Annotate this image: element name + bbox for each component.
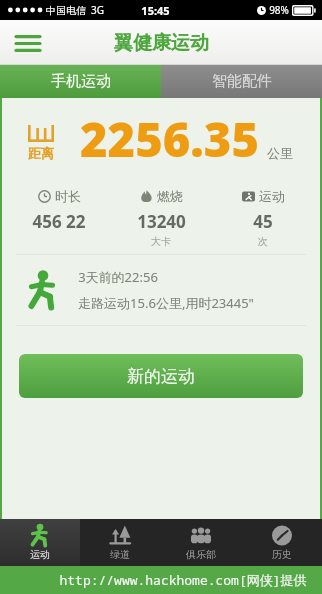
button[interactable]: Menu <box>8 23 48 63</box>
staticText: 新的运动 <box>127 366 195 387</box>
staticText: 历史 <box>272 548 292 561</box>
staticText: 智能配件 <box>212 72 272 91</box>
staticText: 456 22 <box>32 210 86 233</box>
staticText: http://www.hackhome.com[网侠]提供 <box>59 571 307 589</box>
staticText: 运动 <box>30 548 50 561</box>
button[interactable]: 新的运动 <box>19 354 303 398</box>
staticText: 3G <box>91 3 104 17</box>
staticText: 俱乐部 <box>186 548 216 561</box>
button[interactable]: 手机运动 <box>0 65 161 98</box>
button[interactable]: 燃烧 <box>110 188 212 248</box>
button[interactable]: 3天前的22:56 <box>2 255 320 325</box>
staticText: 45 <box>253 210 273 233</box>
staticText: 公里 <box>267 145 293 161</box>
button[interactable]: 运动 <box>0 519 80 566</box>
button[interactable]: 绿道 <box>80 519 160 566</box>
staticText: 大卡 <box>151 235 171 248</box>
button[interactable]: 俱乐部 <box>160 519 241 566</box>
staticText: 走路运动15.6公里,用时23445" <box>78 294 254 312</box>
staticText: 时长 <box>55 188 81 204</box>
staticText: 燃烧 <box>157 188 183 204</box>
staticText: 13240 <box>137 210 186 233</box>
staticText: 次 <box>258 235 268 248</box>
button[interactable]: 历史 <box>241 519 322 566</box>
staticText: 15:45 <box>141 3 170 18</box>
staticText: 2256.35 <box>80 107 259 171</box>
staticText: 距离 <box>28 145 54 161</box>
button[interactable]: 智能配件 <box>161 65 322 98</box>
staticText: 绿道 <box>110 548 130 561</box>
staticText: 手机运动 <box>51 72 111 91</box>
staticText: 运动 <box>259 188 285 204</box>
staticText: 中国电信 <box>46 4 86 17</box>
button[interactable]: 时长 <box>8 188 110 233</box>
staticText: 98% <box>269 3 289 17</box>
staticText: 翼健康运动 <box>114 31 209 55</box>
button[interactable]: 运动 <box>212 188 314 248</box>
staticText: 3天前的22:56 <box>78 268 158 286</box>
